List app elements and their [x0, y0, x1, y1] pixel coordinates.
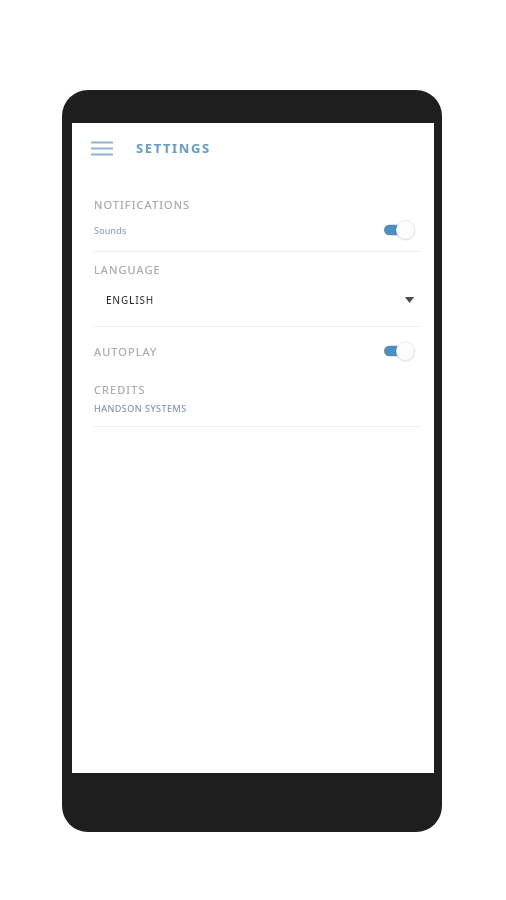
staticText: AUTOPLAY [94, 344, 158, 359]
staticText: LANGUAGE [94, 262, 161, 277]
staticText: HANDSON SYSTEMS [94, 402, 187, 414]
staticText: ENGLISH [106, 293, 155, 307]
button[interactable]: ENGLISH [72, 287, 434, 313]
staticText: Sounds [94, 224, 127, 236]
button[interactable]: HANDSON SYSTEMS [72, 401, 434, 415]
button[interactable]: AUTOPLAY [72, 339, 434, 363]
button[interactable]: Toggle on [384, 220, 418, 240]
staticText: SETTINGS [136, 139, 211, 157]
button[interactable]: Sounds [72, 218, 434, 242]
button[interactable]: Toggle on [384, 341, 418, 361]
staticText: NOTIFICATIONS [94, 197, 191, 212]
button[interactable]: Open navigation menu [86, 132, 118, 164]
staticText: CREDITS [94, 382, 146, 397]
